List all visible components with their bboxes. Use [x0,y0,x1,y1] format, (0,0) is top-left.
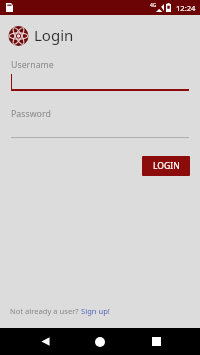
button[interactable]: Username [11,56,189,91]
button[interactable]: Back [27,328,63,355]
button[interactable]: Password [11,105,189,139]
button[interactable]: Home [82,328,118,355]
staticText: Not already a user? [10,306,81,316]
staticText: 4G [150,2,157,9]
staticText: 12:24 [176,3,196,13]
button[interactable]: LOGIN [142,156,190,176]
staticText: Password [11,108,51,120]
staticText: LOGIN [153,160,180,172]
staticText: Sign up! [81,306,110,316]
staticText: Username [11,59,54,71]
button[interactable]: Recent apps [138,328,174,355]
button[interactable]: Sign up! [81,306,110,316]
staticText: Login [34,25,74,45]
